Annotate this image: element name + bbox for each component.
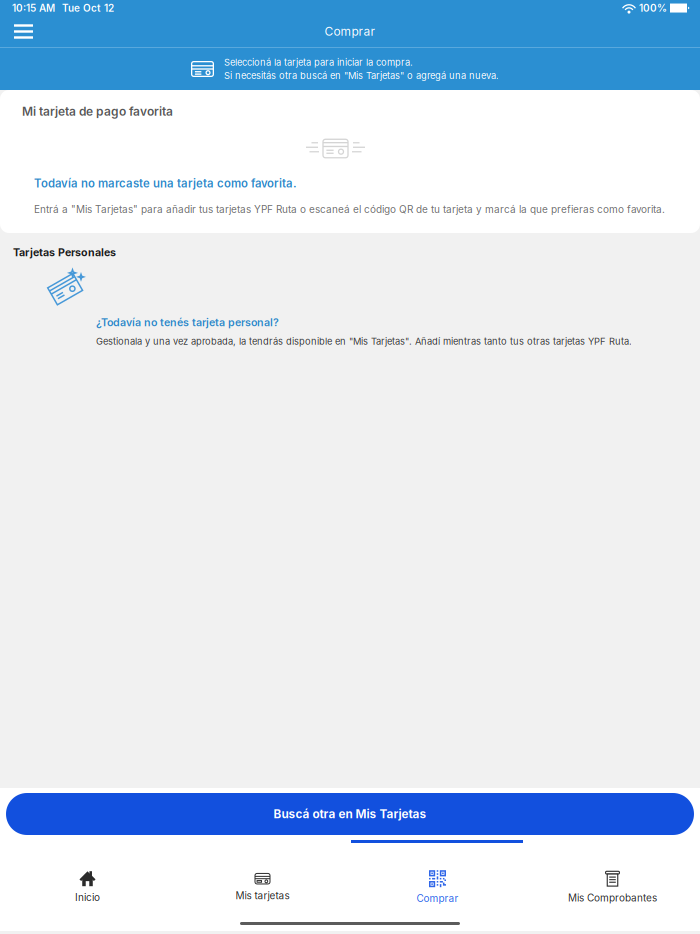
staticText: 100% bbox=[639, 2, 667, 14]
button[interactable]: Menú bbox=[3, 16, 44, 47]
staticText: 10:15 AM bbox=[12, 2, 55, 14]
button[interactable]: Inicio bbox=[0, 843, 175, 907]
button[interactable]: Buscá otra en Mis Tarjetas bbox=[6, 793, 694, 835]
staticText: Gestionala y una vez aprobada, la tendrá… bbox=[96, 336, 632, 347]
staticText: Si necesitás otra buscá en "Mis Tarjetas… bbox=[224, 70, 499, 81]
button[interactable]: Mis tarjetas bbox=[175, 843, 350, 907]
staticText: ¿Todavía no tenés tarjeta personal? bbox=[96, 316, 279, 329]
button[interactable]: Comprar bbox=[350, 843, 525, 907]
staticText: Comprar bbox=[416, 892, 458, 904]
staticText: Tarjetas Personales bbox=[13, 246, 116, 259]
staticText: Seleccioná la tarjeta para iniciar la co… bbox=[224, 57, 413, 68]
button[interactable]: Mis Comprobantes bbox=[525, 843, 700, 907]
staticText: Comprar bbox=[324, 24, 375, 39]
staticText: Mi tarjeta de pago favorita bbox=[22, 104, 173, 118]
staticText: Mis tarjetas bbox=[235, 889, 289, 902]
staticText: Inicio bbox=[75, 891, 100, 903]
staticText: Entrá a "Mis Tarjetas" para añadir tus t… bbox=[34, 203, 665, 215]
staticText: Buscá otra en Mis Tarjetas bbox=[273, 807, 426, 821]
staticText: Tue Oct 12 bbox=[62, 2, 114, 14]
staticText: Todavía no marcaste una tarjeta como fav… bbox=[34, 176, 297, 190]
staticText: Mis Comprobantes bbox=[568, 892, 657, 904]
